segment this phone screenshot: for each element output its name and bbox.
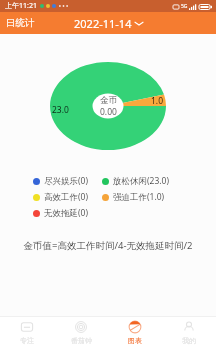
staticText: 图表 [128, 336, 142, 345]
staticText: 2022-11-14 [74, 16, 132, 31]
staticText: 上午11:21 [5, 1, 37, 11]
staticText: 强迫工作(1.0) [113, 191, 165, 203]
staticText: 我的 [182, 336, 196, 345]
staticText: 23.0 [52, 104, 69, 116]
button[interactable]: 我的 [162, 317, 216, 360]
staticText: 专注 [20, 336, 34, 345]
staticText: 放松休闲(23.0) [113, 175, 169, 187]
button[interactable]: 图表 [108, 317, 162, 360]
staticText: 金币值=高效工作时间/4-无效拖延时间/2 [0, 239, 216, 252]
staticText: 无效拖延(0) [44, 207, 88, 219]
staticText: 日统计 [6, 17, 35, 29]
staticText: 5G [181, 3, 188, 10]
staticText: 尽兴娱乐(0) [44, 175, 88, 187]
button[interactable]: 2022-11-14 [74, 16, 143, 31]
staticText: 高效工作(0) [44, 191, 88, 203]
staticText: 0.00 [100, 106, 117, 118]
staticText: 金币 [100, 95, 117, 106]
button[interactable]: 番茄钟 [54, 317, 108, 360]
staticText: 番茄钟 [71, 336, 92, 345]
staticText: 1.0 [151, 95, 164, 107]
button[interactable]: 专注 [0, 317, 54, 360]
